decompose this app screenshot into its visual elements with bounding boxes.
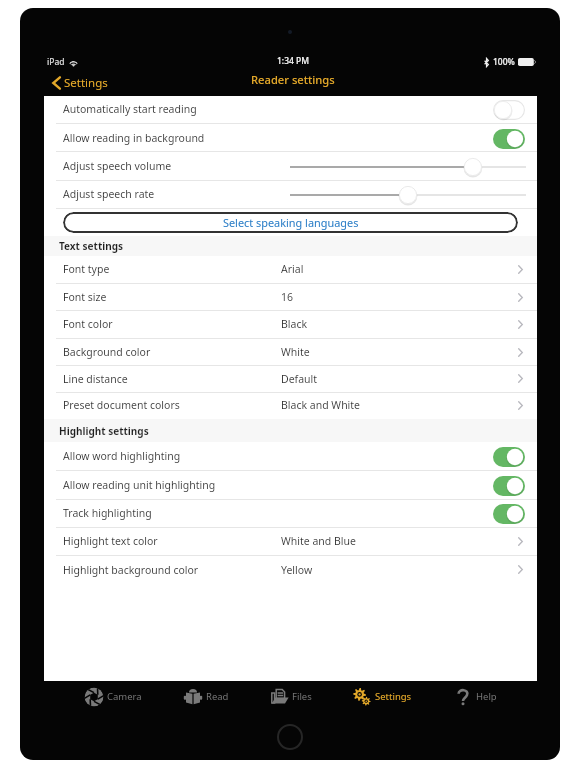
- staticText: Preset document colors: [63, 398, 180, 412]
- staticText: Camera: [107, 690, 142, 703]
- button[interactable]: Allow reading unit highlighting: [44, 471, 537, 500]
- staticText: Automatically start reading: [63, 102, 197, 116]
- staticText: Arial: [281, 262, 304, 276]
- staticText: Black: [281, 317, 308, 331]
- staticText: Font color: [63, 317, 113, 331]
- staticText: Background color: [63, 345, 151, 359]
- staticText: Adjust speech volume: [63, 159, 172, 173]
- staticText: iPad: [47, 56, 65, 68]
- button[interactable]: [281, 152, 535, 181]
- staticText: Track highlighting: [63, 506, 152, 520]
- button[interactable]: Font type: [44, 256, 537, 284]
- staticText: White: [281, 345, 310, 359]
- button[interactable]: Allow reading in background: [44, 124, 537, 153]
- button[interactable]: Allow word highlighting: [44, 442, 537, 471]
- staticText: Line distance: [63, 372, 128, 386]
- staticText: Settings: [64, 75, 108, 91]
- button[interactable]: Line distance: [44, 366, 537, 393]
- staticText: 1:34 PM: [277, 55, 310, 67]
- staticText: Highlight background color: [63, 563, 199, 577]
- button[interactable]: Camera: [84, 681, 142, 712]
- button[interactable]: Settings: [352, 681, 412, 712]
- staticText: Allow word highlighting: [63, 449, 181, 463]
- button[interactable]: Preset document colors: [44, 393, 537, 419]
- staticText: Adjust speech rate: [63, 187, 155, 201]
- button[interactable]: Read: [183, 681, 229, 712]
- staticText: Black and White: [281, 398, 361, 412]
- button[interactable]: Font color: [44, 311, 537, 339]
- staticText: Highlight settings: [59, 424, 149, 438]
- staticText: Files: [292, 690, 312, 703]
- staticText: 16: [281, 290, 294, 304]
- button[interactable]: Highlight text color: [44, 528, 537, 556]
- button[interactable]: Highlight background color: [44, 556, 537, 585]
- button[interactable]: Help: [453, 681, 497, 712]
- staticText: Font type: [63, 262, 110, 276]
- button[interactable]: Track highlighting: [44, 500, 537, 528]
- button[interactable]: Files: [269, 681, 312, 712]
- staticText: Settings: [375, 690, 412, 703]
- button[interactable]: Background color: [44, 339, 537, 367]
- staticText: Read: [206, 690, 229, 703]
- staticText: Select speaking languages: [223, 215, 359, 230]
- button[interactable]: Font size: [44, 284, 537, 312]
- staticText: Allow reading in background: [63, 131, 205, 145]
- staticText: Default: [281, 372, 318, 386]
- staticText: White and Blue: [281, 534, 356, 548]
- staticText: Allow reading unit highlighting: [63, 478, 216, 492]
- staticText: Reader settings: [251, 72, 335, 87]
- staticText: Yellow: [281, 563, 313, 577]
- staticText: Font size: [63, 290, 107, 304]
- button[interactable]: [281, 181, 535, 209]
- button[interactable]: Automatically start reading: [44, 96, 537, 124]
- staticText: 100%: [493, 56, 515, 68]
- staticText: Highlight text color: [63, 534, 158, 548]
- staticText: Help: [476, 690, 497, 703]
- button[interactable]: Select speaking languages: [63, 212, 518, 233]
- staticText: Text settings: [59, 239, 124, 253]
- button[interactable]: Settings: [52, 75, 108, 91]
